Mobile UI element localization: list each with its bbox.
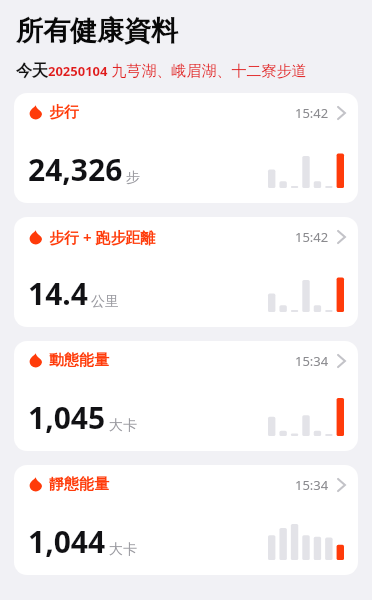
staticText: 動態能量 xyxy=(49,351,109,370)
staticText: 大卡 xyxy=(109,417,137,435)
staticText: 今天20250104 九芎湖、峨眉湖、十二寮步道 xyxy=(16,60,307,81)
button[interactable]: 動態能量 xyxy=(14,341,358,451)
button[interactable]: 步行 xyxy=(14,93,358,203)
staticText: 公里 xyxy=(91,293,119,311)
staticText: 15:42 xyxy=(295,104,329,122)
staticText: 步行 + 跑步距離 xyxy=(49,227,156,247)
staticText: 15:34 xyxy=(295,352,329,370)
staticText: 靜態能量 xyxy=(49,475,109,494)
staticText: 1,045 xyxy=(28,397,106,438)
button[interactable]: 步行 + 跑步距離 xyxy=(14,217,358,327)
staticText: 步行 xyxy=(49,103,79,122)
staticText: 步 xyxy=(126,169,140,187)
staticText: 1,044 xyxy=(28,521,106,562)
staticText: 大卡 xyxy=(109,541,137,559)
staticText: 24,326 xyxy=(28,149,123,190)
staticText: 14.4 xyxy=(28,273,88,314)
staticText: 15:34 xyxy=(295,476,329,494)
button[interactable]: 靜態能量 xyxy=(14,465,358,575)
staticText: 所有健康資料 xyxy=(16,14,178,48)
staticText: 15:42 xyxy=(295,228,329,246)
